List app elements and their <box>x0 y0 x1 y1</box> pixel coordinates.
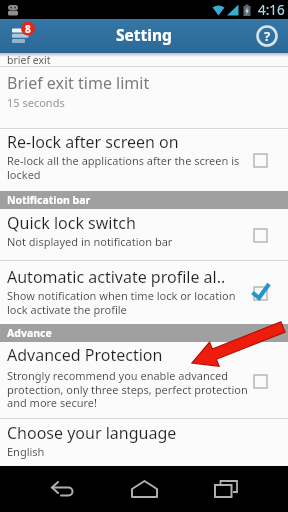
staticText: Strongly recommend you enable advanced p… <box>7 368 248 410</box>
staticText: Not displayed in notification bar <box>7 234 173 249</box>
staticText: 8 <box>25 22 31 36</box>
staticText: Advanced Protection <box>7 344 163 366</box>
button[interactable] <box>21 466 103 512</box>
staticText: ? <box>264 27 271 45</box>
staticText: Re-lock after screen on <box>7 131 179 153</box>
staticText: Choose your language <box>7 422 177 444</box>
button[interactable] <box>103 466 185 512</box>
button[interactable]: Brief exit time limit <box>0 67 288 129</box>
staticText: Quick lock switch <box>7 212 136 234</box>
button[interactable]: Automatic activate profile al.. <box>0 261 288 324</box>
staticText: English <box>7 444 45 459</box>
staticText: Brief exit time limit <box>7 72 150 94</box>
staticText: Re-lock all the applications after the s… <box>7 153 240 182</box>
staticText: Show notification when time lock or loca… <box>7 288 236 317</box>
staticText: 15 seconds <box>7 95 65 110</box>
button[interactable] <box>185 466 267 512</box>
button[interactable]: brief exit <box>0 53 288 67</box>
button[interactable]: ? <box>246 19 288 53</box>
button[interactable]: Re-lock after screen on <box>0 129 288 191</box>
staticText: brief exit <box>7 53 51 65</box>
staticText: Advance <box>7 326 52 340</box>
staticText: Notification bar <box>7 193 91 207</box>
staticText: 4:16 <box>258 1 285 19</box>
button[interactable]: Choose your language <box>0 419 288 466</box>
button[interactable]: Quick lock switch <box>0 209 288 261</box>
staticText: Setting <box>116 24 172 45</box>
staticText: Automatic activate profile al.. <box>7 266 226 288</box>
button[interactable]: 8 <box>0 19 44 53</box>
button[interactable]: Advanced Protection <box>0 342 288 419</box>
